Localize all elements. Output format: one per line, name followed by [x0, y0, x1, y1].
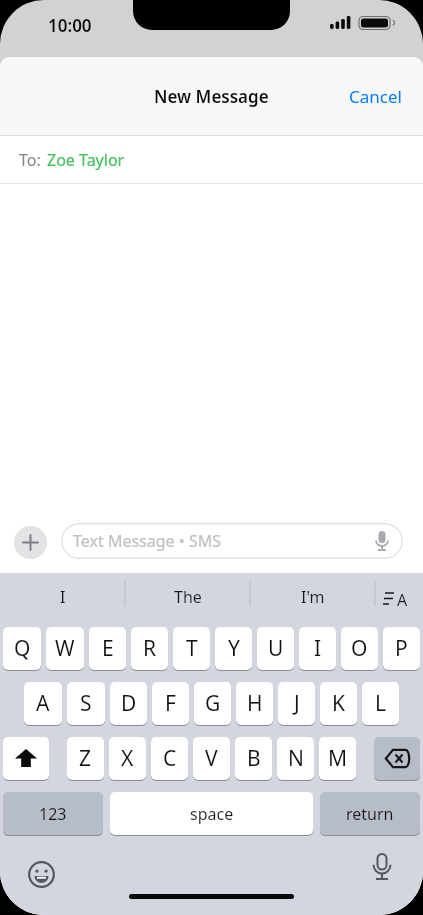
- staticText: I: [60, 586, 66, 608]
- staticText: I: [314, 634, 322, 663]
- staticText: Zoe Taylor: [47, 149, 125, 171]
- staticText: 123: [39, 803, 67, 825]
- button[interactable]: R: [131, 627, 168, 671]
- staticText: return: [346, 803, 394, 825]
- button[interactable]: P: [383, 627, 420, 671]
- button[interactable]: I'm: [250, 573, 375, 616]
- staticText: L: [375, 689, 387, 718]
- button[interactable]: I: [0, 573, 125, 616]
- button[interactable]: G: [194, 682, 231, 726]
- staticText: F: [165, 689, 176, 718]
- staticText: N: [288, 744, 304, 773]
- staticText: 10:00: [48, 14, 92, 37]
- button[interactable]: X: [109, 737, 146, 781]
- staticText: To:: [19, 149, 41, 171]
- button[interactable]: B: [235, 737, 272, 781]
- staticText: Q: [14, 634, 31, 663]
- button[interactable]: Cancel: [349, 85, 402, 108]
- staticText: A: [36, 689, 50, 718]
- button[interactable]: Q: [3, 627, 41, 671]
- staticText: A: [397, 589, 408, 611]
- staticText: E: [102, 634, 114, 663]
- button[interactable]: Text Message • SMS: [61, 523, 403, 559]
- button[interactable]: K: [320, 682, 357, 726]
- button[interactable]: space: [110, 792, 313, 836]
- button[interactable]: [28, 861, 55, 888]
- button[interactable]: D: [110, 682, 147, 726]
- button[interactable]: Y: [215, 627, 252, 671]
- staticText: W: [55, 634, 75, 663]
- button[interactable]: T: [173, 627, 210, 671]
- staticText: T: [186, 634, 198, 663]
- staticText: Y: [228, 634, 240, 663]
- button[interactable]: L: [362, 682, 399, 726]
- staticText: Cancel: [349, 85, 402, 108]
- button[interactable]: U: [257, 627, 294, 671]
- button[interactable]: C: [151, 737, 188, 781]
- staticText: S: [80, 689, 92, 718]
- staticText: J: [294, 689, 300, 718]
- staticText: Text Message • SMS: [73, 530, 222, 552]
- button[interactable]: [374, 737, 420, 781]
- staticText: New Message: [154, 85, 269, 108]
- staticText: V: [205, 744, 218, 773]
- button[interactable]: N: [277, 737, 314, 781]
- button[interactable]: [3, 737, 49, 781]
- staticText: space: [190, 803, 234, 825]
- button[interactable]: V: [193, 737, 230, 781]
- staticText: U: [268, 634, 284, 663]
- button[interactable]: To:: [0, 136, 423, 184]
- staticText: I'm: [301, 586, 325, 608]
- staticText: K: [332, 689, 345, 718]
- button[interactable]: E: [89, 627, 126, 671]
- staticText: G: [205, 689, 221, 718]
- button[interactable]: [14, 526, 47, 559]
- button[interactable]: The: [125, 573, 250, 616]
- staticText: The: [174, 586, 202, 608]
- button[interactable]: F: [152, 682, 189, 726]
- button[interactable]: Z: [67, 737, 104, 781]
- button[interactable]: W: [46, 627, 84, 671]
- staticText: Z: [79, 744, 92, 773]
- button[interactable]: M: [319, 737, 356, 781]
- staticText: X: [121, 744, 134, 773]
- staticText: R: [143, 634, 157, 663]
- button[interactable]: I: [299, 627, 336, 671]
- button[interactable]: S: [67, 682, 105, 726]
- button[interactable]: A: [24, 682, 62, 726]
- staticText: P: [395, 634, 408, 663]
- button[interactable]: J: [278, 682, 315, 726]
- staticText: M: [328, 744, 348, 773]
- staticText: H: [247, 689, 263, 718]
- staticText: B: [247, 744, 261, 773]
- button[interactable]: O: [341, 627, 378, 671]
- button[interactable]: H: [236, 682, 273, 726]
- button[interactable]: [371, 854, 393, 890]
- staticText: O: [351, 634, 368, 663]
- button[interactable]: 123: [3, 792, 103, 836]
- staticText: D: [121, 689, 137, 718]
- staticText: C: [163, 744, 177, 773]
- button[interactable]: return: [320, 792, 420, 836]
